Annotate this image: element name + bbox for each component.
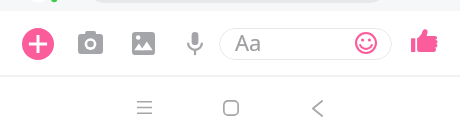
button[interactable]: Photos: [132, 32, 155, 55]
button[interactable]: Send a like: [411, 29, 437, 52]
button[interactable]: Emoji: [355, 32, 377, 54]
button[interactable]: More options: [22, 28, 54, 60]
button[interactable]: Back: [293, 86, 341, 130]
button[interactable]: Home: [207, 86, 255, 130]
staticText: Aa: [235, 28, 262, 57]
button[interactable]: Camera: [78, 31, 103, 54]
button[interactable]: Voice message: [186, 32, 204, 55]
button[interactable]: Aa: [219, 28, 392, 60]
button[interactable]: Recent apps: [120, 85, 168, 129]
